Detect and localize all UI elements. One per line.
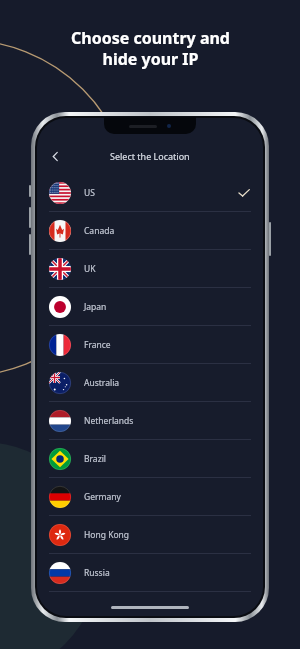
- button[interactable]: US: [37, 174, 263, 212]
- button[interactable]: UK: [37, 250, 263, 288]
- staticText: Netherlands: [84, 415, 134, 427]
- button[interactable]: Canada: [37, 212, 263, 250]
- staticText: Australia: [84, 377, 120, 389]
- staticText: Germany: [84, 491, 121, 503]
- button[interactable]: Japan: [37, 288, 263, 326]
- staticText: Hong Kong: [84, 529, 130, 541]
- staticText: Japan: [84, 301, 107, 313]
- button[interactable]: France: [37, 326, 263, 364]
- staticText: France: [84, 339, 111, 351]
- button[interactable]: Hong Kong: [37, 516, 263, 554]
- staticText: UK: [84, 263, 96, 275]
- staticText: Russia: [84, 567, 110, 579]
- button[interactable]: Brazil: [37, 440, 263, 478]
- staticText: Brazil: [84, 453, 107, 465]
- button[interactable]: Germany: [37, 478, 263, 516]
- button[interactable]: Russia: [37, 554, 263, 592]
- staticText: Choose country and hide your IP: [71, 27, 230, 70]
- button[interactable]: Netherlands: [37, 402, 263, 440]
- staticText: US: [84, 187, 95, 199]
- staticText: Select the Location: [110, 150, 190, 162]
- button[interactable]: Australia: [37, 364, 263, 402]
- button[interactable]: Back: [43, 144, 67, 168]
- staticText: Canada: [84, 225, 115, 237]
